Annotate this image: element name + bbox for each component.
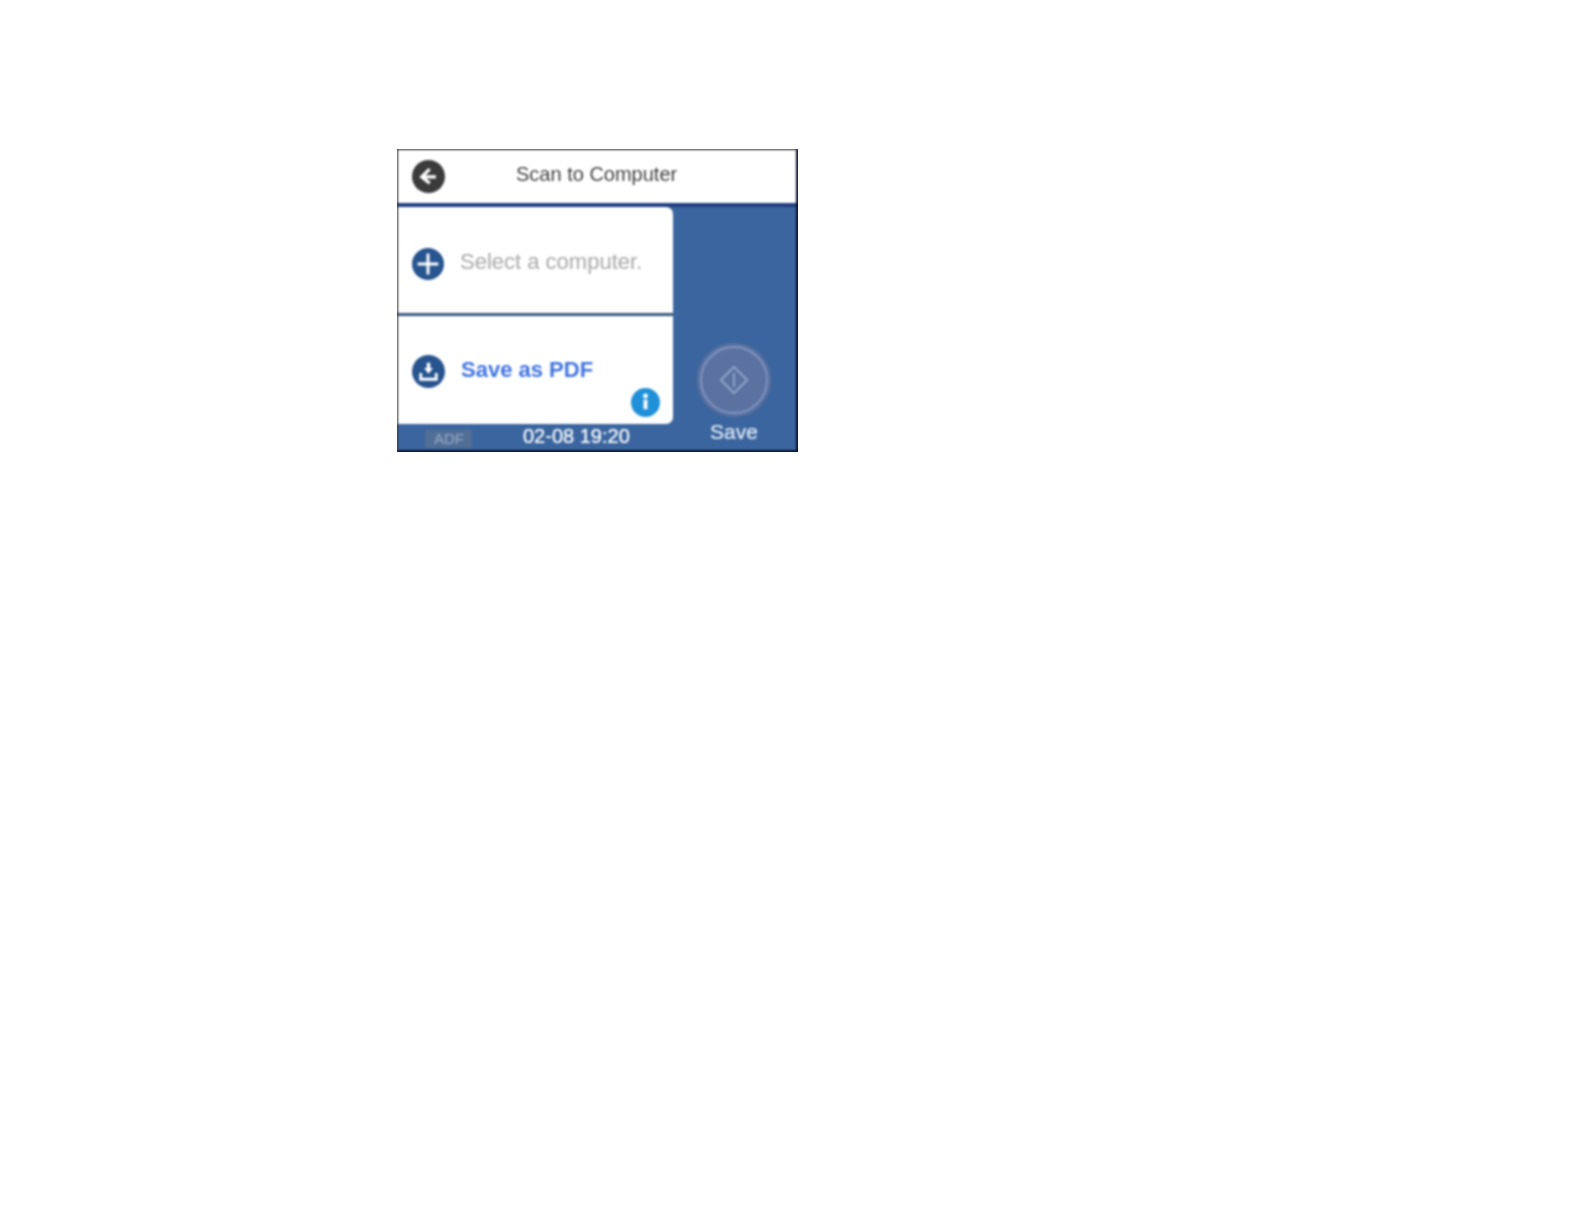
staticText: Select a computer. (460, 249, 643, 274)
staticText: Save as PDF (461, 357, 594, 382)
button[interactable]: Save as PDF (398, 316, 673, 424)
staticText: Scan to Computer (516, 163, 678, 185)
staticText: Save (710, 420, 758, 443)
button[interactable]: Information (631, 388, 660, 417)
staticText: ADF (434, 430, 464, 447)
staticText: 02-08 19:20 (523, 425, 630, 447)
button[interactable]: Select a computer. (398, 207, 673, 314)
button[interactable]: Back (412, 160, 445, 193)
button[interactable]: Save (697, 343, 771, 417)
